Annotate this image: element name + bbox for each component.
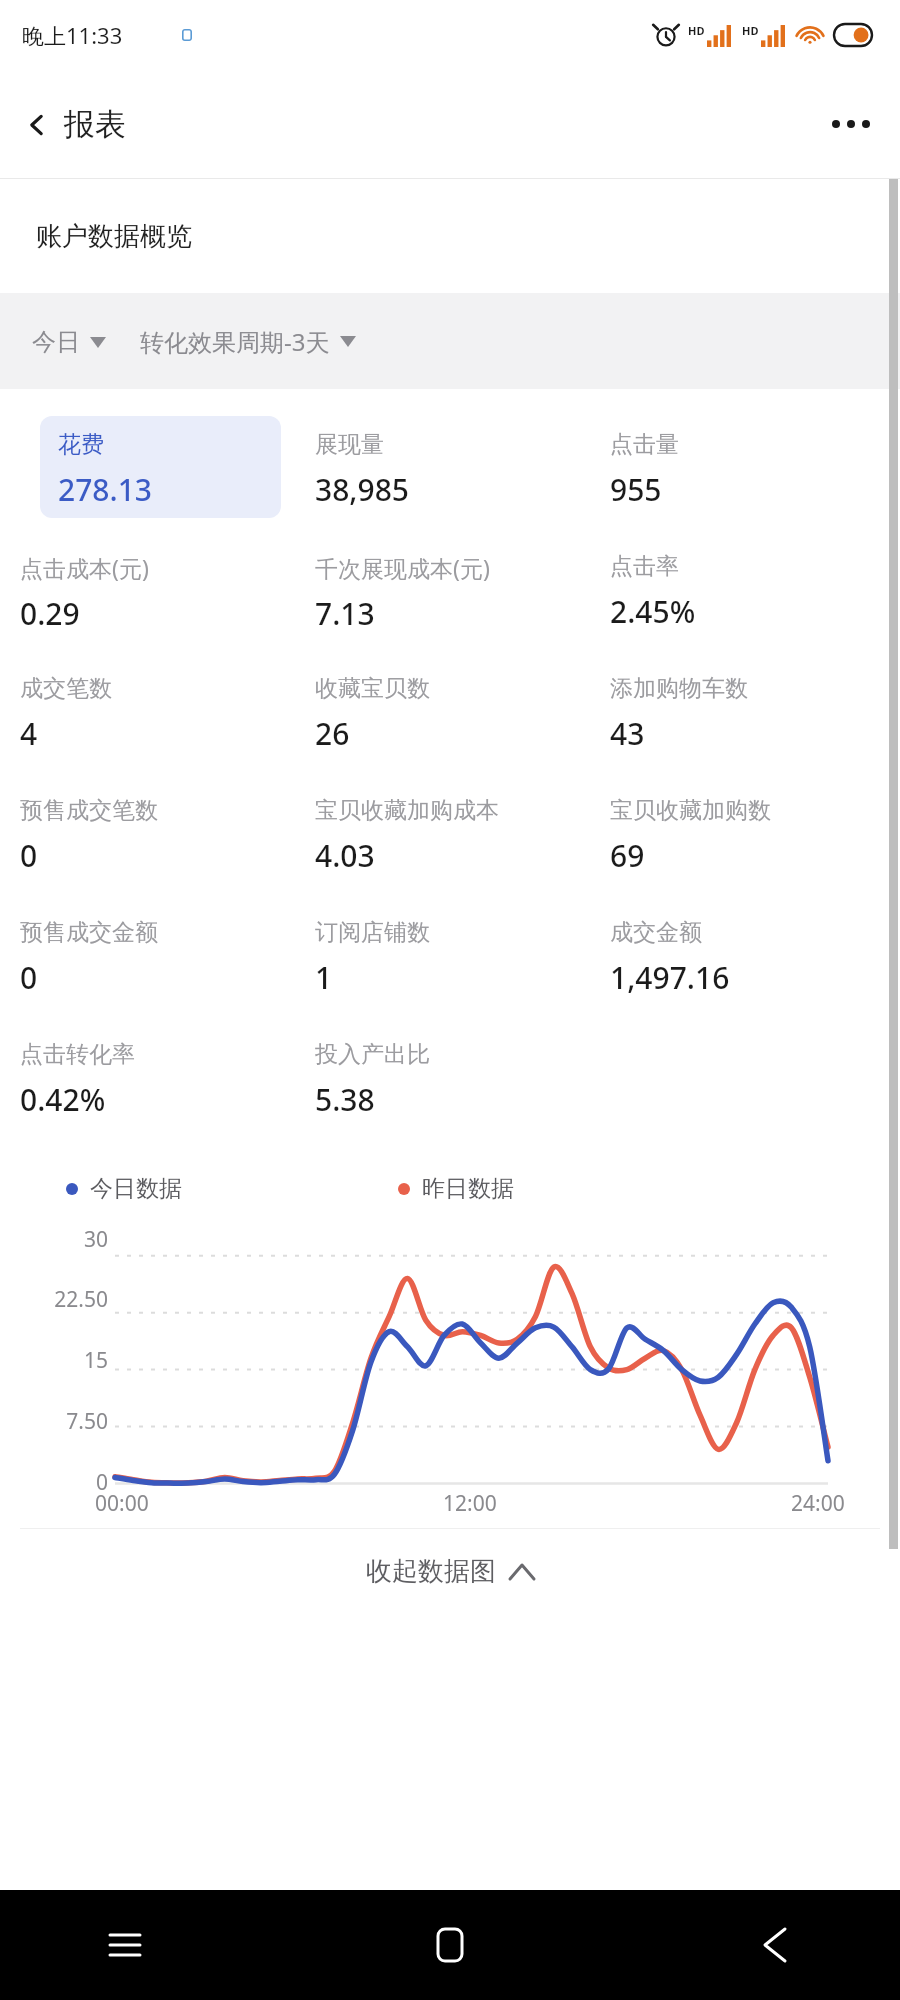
button[interactable]: 成交金额 [590,894,900,1016]
staticText: 0.42% [20,1079,106,1120]
staticText: 38,985 [315,469,409,510]
button[interactable]: 点击转化率 [0,1016,295,1138]
staticText: 晚上11:33 [22,20,123,50]
button[interactable]: 投入产出比 [295,1016,590,1138]
staticText: 30 [0,1225,108,1254]
staticText: 报表 [64,105,126,144]
button[interactable]: 宝贝收藏加购成本 [295,772,590,894]
staticText: 278.13 [58,469,152,510]
staticText: 5.38 [315,1079,375,1120]
staticText: 43 [610,713,645,754]
staticText: 预售成交金额 [20,918,158,947]
staticText: 预售成交笔数 [20,796,158,825]
staticText: 成交金额 [610,918,702,947]
button[interactable]: 展现量 [295,406,590,528]
staticText: 0.29 [20,593,80,634]
staticText: 今日 [32,327,80,357]
staticText: 千次展现成本(元) [315,552,490,583]
staticText: 账户数据概览 [36,220,192,253]
staticText: 收藏宝贝数 [315,674,430,703]
button[interactable]: 收起数据图 [0,1549,900,1594]
staticText: 22.50 [0,1285,108,1314]
button[interactable]: 转化效果周期-3天 [140,317,356,366]
button[interactable]: 点击率 [590,528,900,650]
button[interactable]: 点击成本(元) [0,528,295,650]
button[interactable]: 添加购物车数 [590,650,900,772]
button[interactable]: 点击量 [590,406,900,528]
staticText: 955 [610,469,662,510]
button[interactable]: 预售成交笔数 [0,772,295,894]
button[interactable]: Recent apps [90,1910,160,1980]
staticText: 收起数据图 [366,1555,496,1588]
staticText: 点击率 [610,552,679,581]
button[interactable]: 宝贝收藏加购数 [590,772,900,894]
staticText: 今日数据 [90,1174,182,1203]
button[interactable]: 收藏宝贝数 [295,650,590,772]
staticText: 2.45% [610,591,696,632]
staticText: HD [688,23,705,38]
staticText: 15 [0,1346,108,1375]
staticText: 点击转化率 [20,1040,135,1069]
staticText: 1 [315,957,333,998]
staticText: 宝贝收藏加购成本 [315,796,499,825]
button[interactable]: 订阅店铺数 [295,894,590,1016]
staticText: 花费 [58,430,104,459]
staticText: 点击量 [610,430,679,459]
staticText: HD [742,23,759,38]
staticText: 转化效果周期-3天 [140,325,330,358]
staticText: 添加购物车数 [610,674,748,703]
button[interactable]: 花费 [40,416,281,518]
button[interactable]: 千次展现成本(元) [295,528,590,650]
button[interactable]: 成交笔数 [0,650,295,772]
button[interactable]: 今日 [32,319,106,365]
staticText: 1,497.16 [610,957,730,998]
button[interactable]: Back [740,1910,810,1980]
staticText: 订阅店铺数 [315,918,430,947]
staticText: 24:00 [791,1489,845,1518]
staticText: 0 [20,957,38,998]
staticText: 宝贝收藏加购数 [610,796,771,825]
staticText: 00:00 [95,1489,149,1518]
staticText: 12:00 [443,1489,497,1518]
staticText: 点击成本(元) [20,552,149,583]
button[interactable]: Back [14,97,136,152]
staticText: 0 [0,1468,108,1497]
button[interactable]: Home [415,1910,485,1980]
button[interactable]: 预售成交金额 [0,894,295,1016]
staticText: 4 [20,713,38,754]
staticText: 昨日数据 [422,1174,514,1203]
button[interactable]: More options [820,108,882,140]
staticText: 投入产出比 [315,1040,430,1069]
staticText: 0 [20,835,38,876]
staticText: 26 [315,713,350,754]
staticText: 7.50 [0,1407,108,1436]
staticText: 4.03 [315,835,375,876]
staticText: 69 [610,835,645,876]
staticText: 成交笔数 [20,674,112,703]
staticText: 7.13 [315,593,375,634]
staticText: 展现量 [315,430,384,459]
